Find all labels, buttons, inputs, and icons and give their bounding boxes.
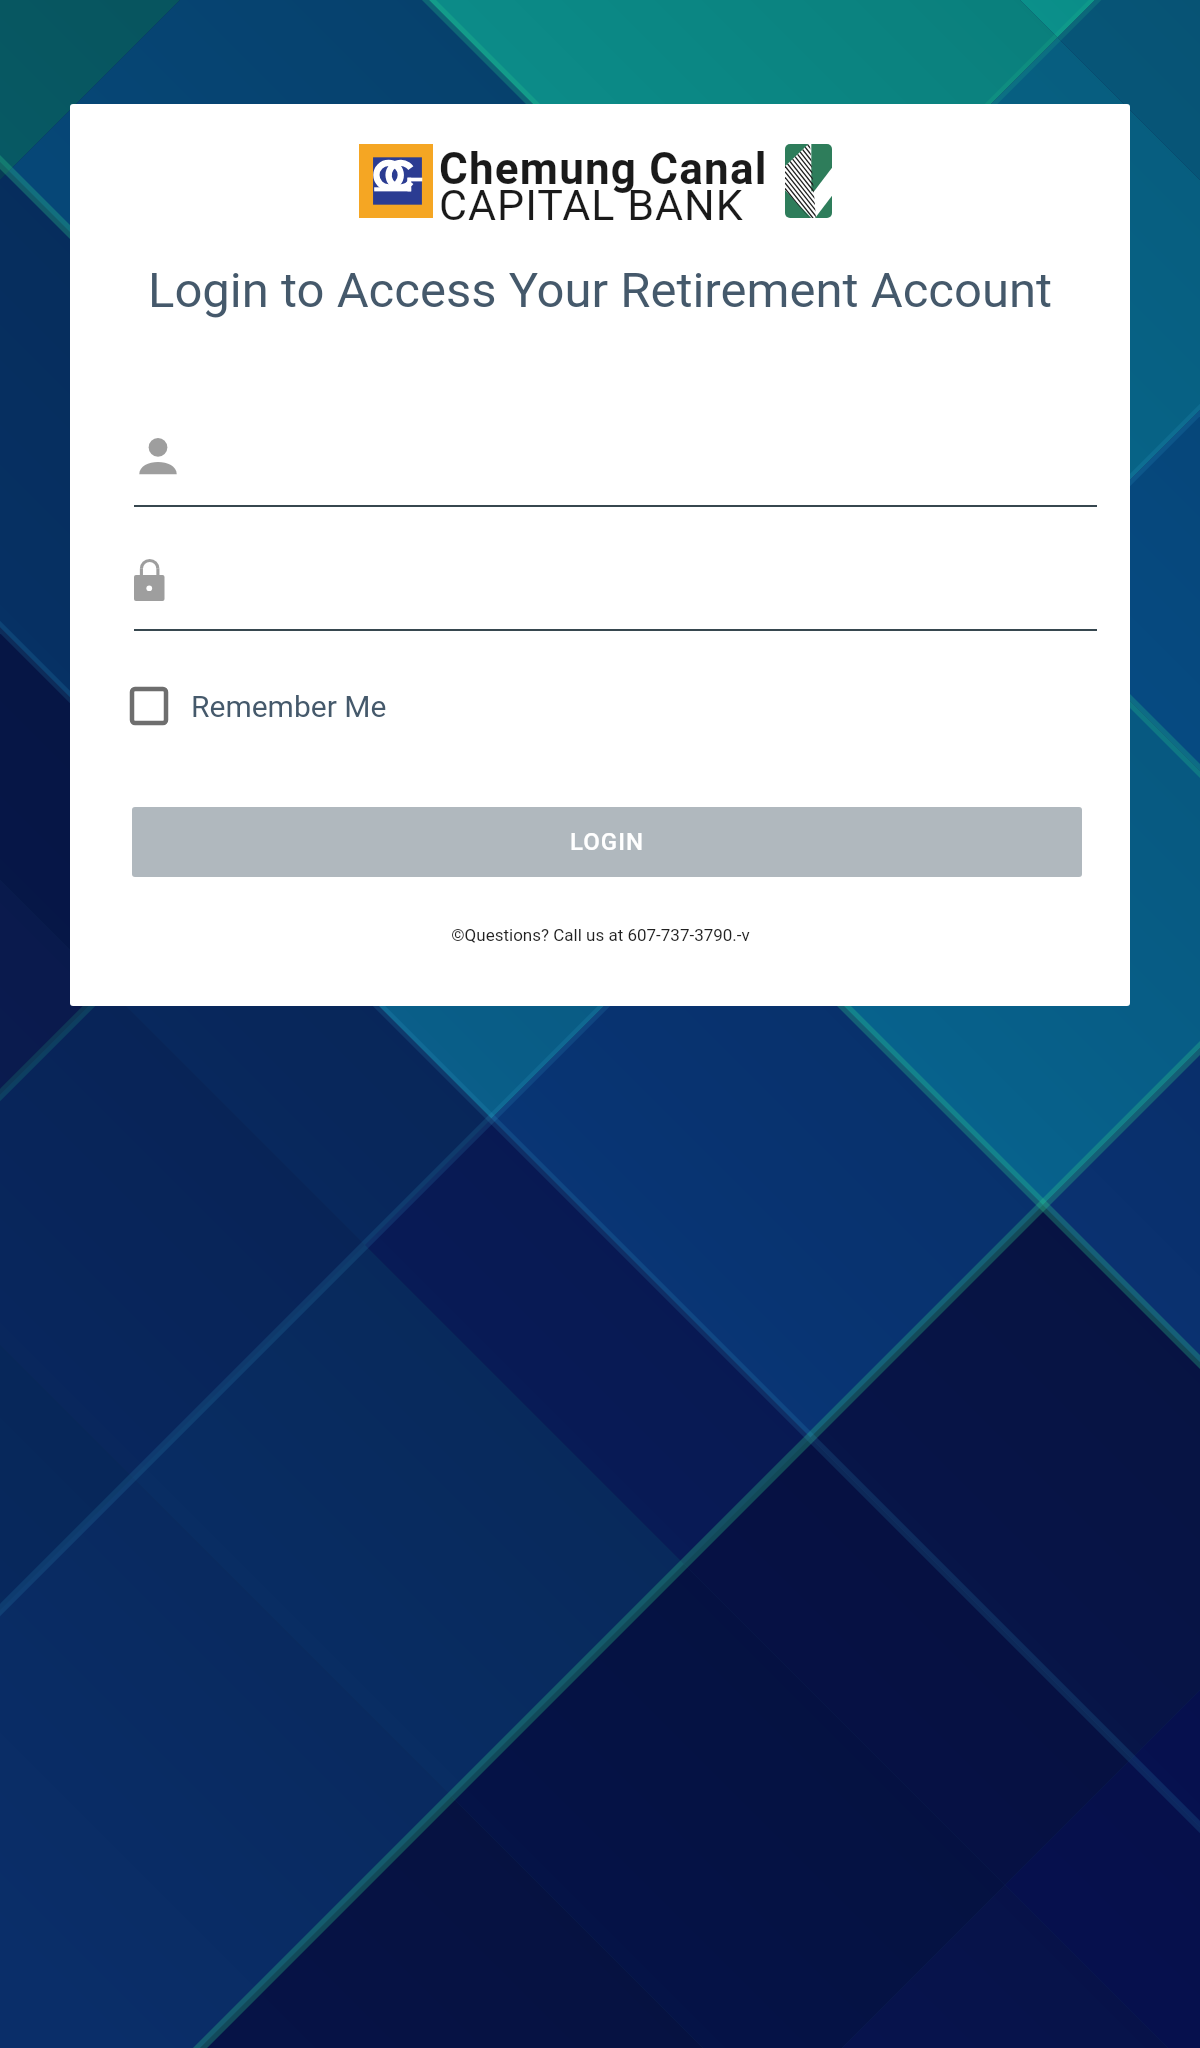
staticText: CAPITAL BANK	[439, 180, 744, 230]
staticText: Chemung Canal	[439, 143, 768, 195]
staticText: Remember Me	[191, 689, 387, 724]
staticText: Login to Access Your Retirement Account	[148, 262, 1052, 319]
button[interactable]: LOGIN	[132, 807, 1082, 877]
button[interactable]: Remember Me	[127, 684, 387, 728]
staticText: ©Questions? Call us at 607-737-3790.-v	[451, 925, 750, 945]
staticText: LOGIN	[570, 828, 644, 856]
